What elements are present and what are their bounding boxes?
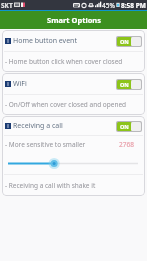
button[interactable]: WiFi [5,74,142,94]
staticText: Smart Options [47,15,101,25]
button[interactable]: - Receiving a call with shake it [5,175,145,195]
staticText: Home button event [13,36,77,46]
staticText: SKT [1,1,13,10]
staticText: 2768 [119,140,134,149]
staticText: 45% [102,1,115,10]
staticText: 8:58 PM [121,1,146,10]
button[interactable]: Receiving a call [5,117,142,135]
button[interactable]: - On/Off when cover closed and opened [5,95,145,114]
button[interactable] [2,152,145,174]
staticText: ON [120,123,129,130]
staticText: ON [120,81,129,88]
button[interactable]: Toggle on [117,80,141,89]
button[interactable]: - More sensitive to smaller [5,136,134,152]
staticText: Receiving a call [13,121,63,131]
staticText: - On/Off when cover closed and opened [5,100,127,109]
staticText: ON [120,38,129,45]
staticText: - Receiving a call with shake it [5,181,96,190]
button[interactable]: Toggle on [117,37,141,46]
staticText: WiFi [13,79,27,89]
button[interactable]: - Home button click when cover closed [5,52,145,71]
button[interactable]: Toggle on [117,122,141,131]
staticText: - More sensitive to smaller [5,140,86,149]
button[interactable]: Home button event [5,31,142,51]
staticText: - Home button click when cover closed [5,57,123,66]
